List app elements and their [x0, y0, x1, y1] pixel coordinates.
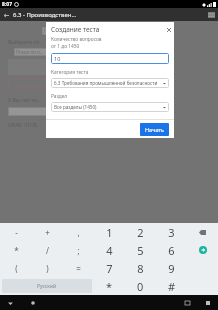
button[interactable]: 4 [94, 241, 125, 259]
staticText: ОБАВ, ЧТОБ… [8, 122, 41, 129]
button[interactable]: Menu [205, 8, 218, 21]
staticText: + [45, 227, 50, 238]
button[interactable]: 6.3 Требования промышленной безопасности… [51, 78, 169, 88]
staticText: Русский [37, 283, 57, 290]
button[interactable]: ; [63, 241, 94, 259]
staticText: 9 [168, 261, 175, 276]
staticText: Начать [145, 126, 164, 133]
staticText: 7 [106, 261, 113, 276]
staticText: Поиск по п… [16, 49, 44, 55]
button[interactable]: Back [28, 298, 38, 308]
button[interactable]: Начать [140, 123, 169, 136]
button[interactable]: + [32, 224, 63, 241]
staticText: от 1 до 1450 [51, 43, 80, 50]
button[interactable]: 2 [125, 224, 156, 241]
button[interactable]: Back [0, 9, 12, 21]
staticText: Количество вопросов [51, 36, 102, 43]
staticText: 6.3 Требования промышленной безопасности… [54, 80, 161, 86]
staticText: ) [46, 263, 49, 274]
staticText: 0 [137, 279, 144, 294]
staticText: 10 [54, 55, 61, 62]
button[interactable]: 7 [94, 259, 125, 277]
staticText: Все разделы (1450) [54, 104, 97, 110]
button[interactable]: 6 [156, 241, 187, 259]
staticText: ; [77, 245, 80, 256]
staticText: ( [15, 263, 18, 274]
button[interactable]: Все разделы (1450) [51, 102, 169, 112]
button[interactable]: 9 [156, 259, 187, 277]
staticText: Поиск по а… [44, 28, 72, 34]
button[interactable]: ) [32, 259, 63, 277]
button[interactable]: / [32, 241, 63, 259]
button[interactable]: # [156, 277, 187, 295]
button[interactable]: Enter [187, 241, 218, 259]
staticText: 2 [137, 225, 144, 240]
button[interactable]: Home [203, 298, 213, 308]
staticText: Выберите об… [8, 39, 44, 46]
staticText: - [15, 227, 18, 238]
staticText: * [106, 279, 113, 294]
staticText: * [14, 245, 19, 256]
staticText: 8:07 [2, 1, 12, 8]
staticText: 3 [168, 225, 175, 240]
button[interactable]: 10 [51, 53, 169, 64]
staticText: У Вас нет но… [8, 97, 42, 104]
staticText: 6 [168, 243, 175, 258]
button[interactable]: - [0, 224, 32, 241]
staticText: 5 [137, 243, 144, 258]
button[interactable]: 0 [125, 277, 156, 295]
staticText: , [77, 227, 80, 238]
staticText: 6.3 - Производствен… [13, 11, 77, 19]
staticText: Категория теста [51, 69, 89, 76]
button[interactable]: 1 [94, 224, 125, 241]
staticText: = [76, 263, 81, 274]
button[interactable]: * [0, 241, 32, 259]
staticText: 4 [106, 243, 113, 258]
button[interactable]: ( [0, 259, 32, 277]
button[interactable]: Hide keyboard [5, 298, 15, 308]
button[interactable]: = [63, 259, 94, 277]
button[interactable]: 5 [125, 241, 156, 259]
button[interactable]: 8 [125, 259, 156, 277]
staticText: Создание теста [51, 25, 100, 34]
button[interactable]: Recents [182, 298, 192, 308]
staticText: Раздел [51, 93, 68, 100]
button[interactable]: Close [163, 24, 174, 35]
button[interactable]: Русский [2, 279, 92, 293]
button[interactable]: Backspace [187, 224, 218, 241]
staticText: / [46, 245, 49, 256]
button[interactable]: , [63, 224, 94, 241]
button[interactable]: 3 [156, 224, 187, 241]
staticText: 8 [137, 261, 144, 276]
button[interactable]: * [94, 277, 125, 295]
staticText: 1 [106, 225, 113, 240]
staticText: # [168, 279, 176, 294]
